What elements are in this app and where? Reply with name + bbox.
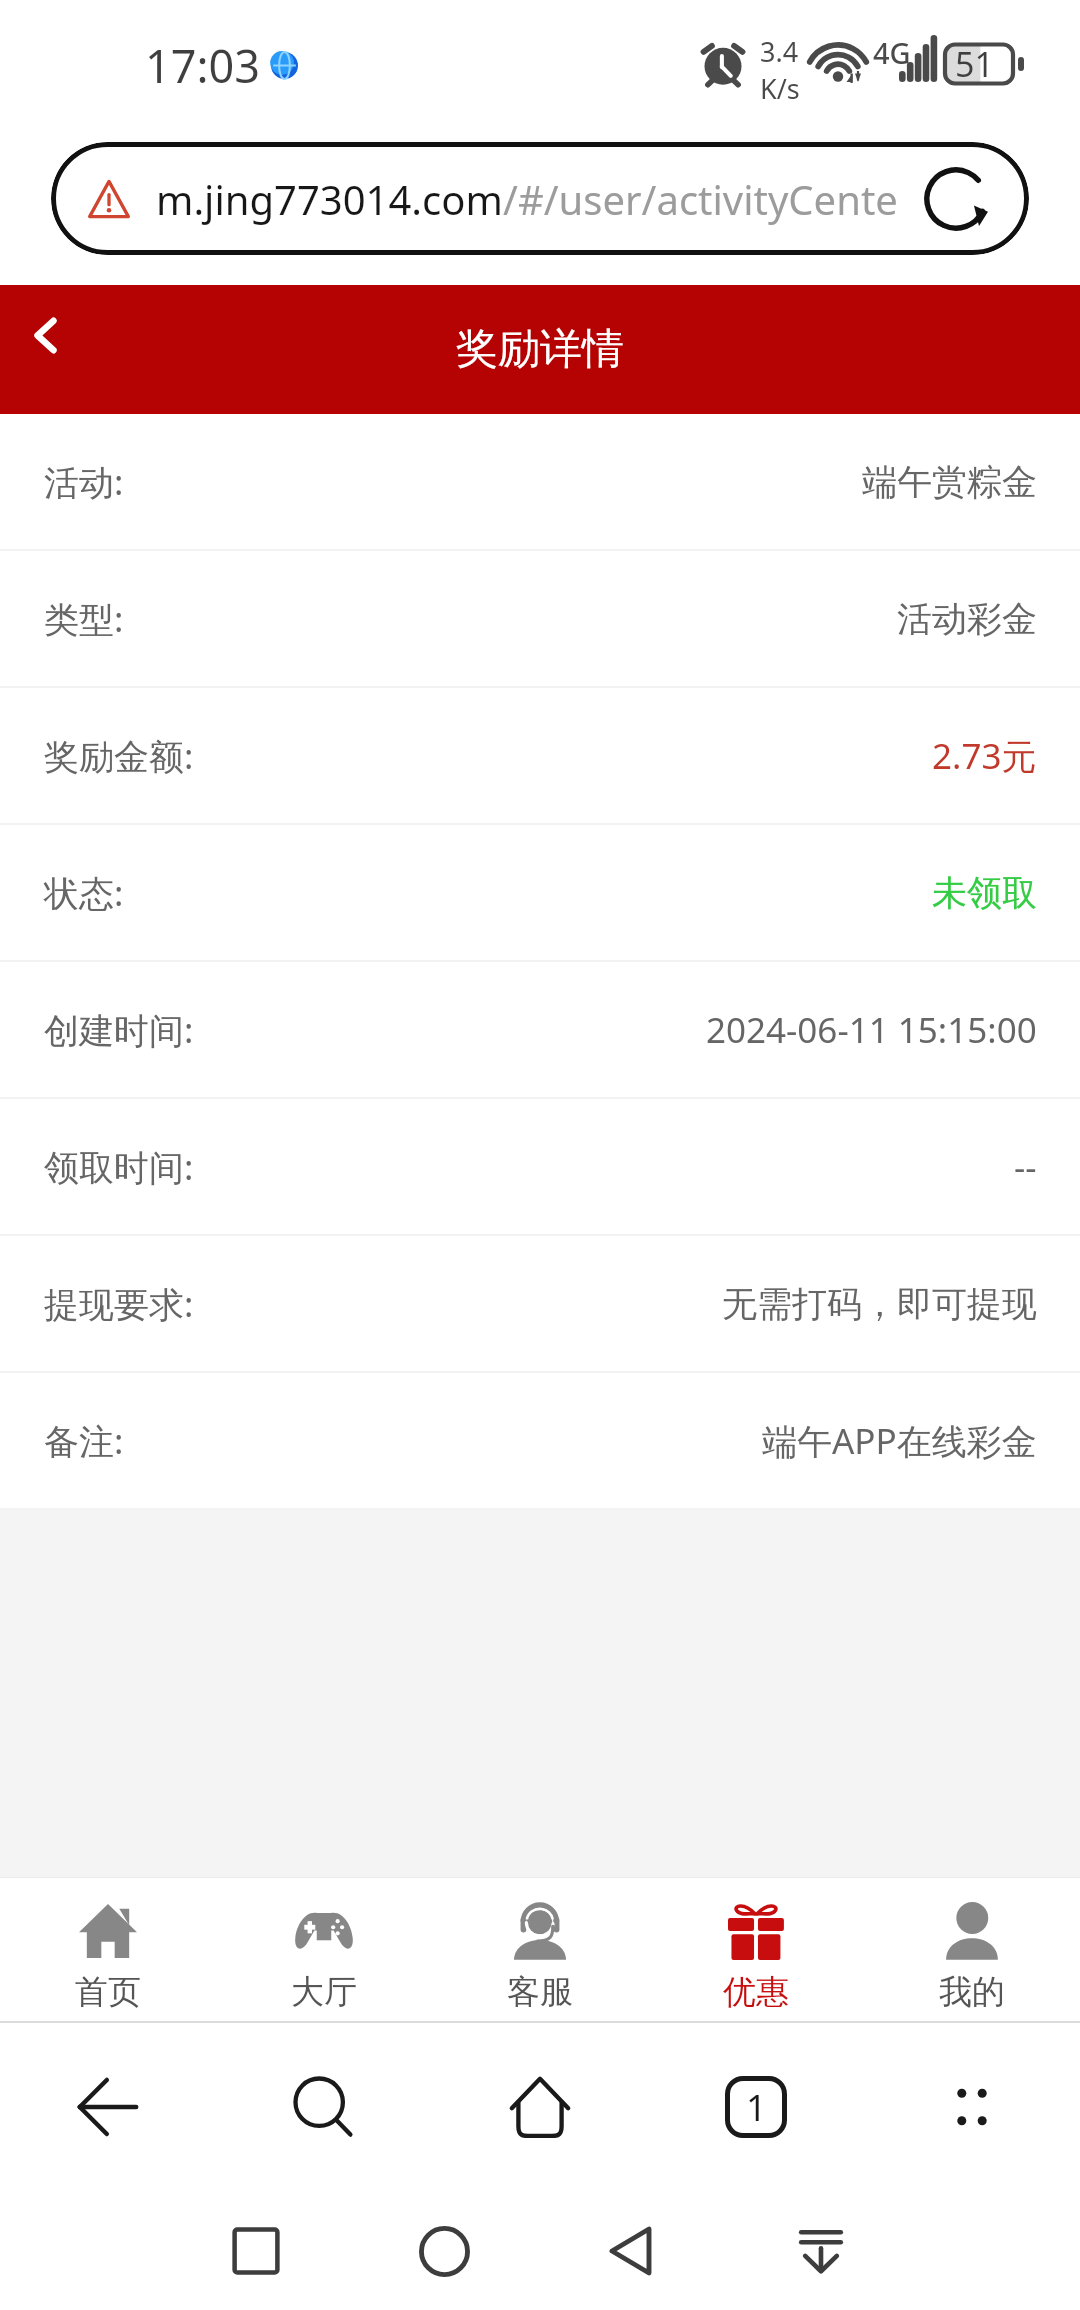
staticText: 状态:: [44, 869, 124, 917]
button[interactable]: Back: [592, 2211, 672, 2291]
button[interactable]: 类型:: [0, 551, 1080, 686]
staticText: 创建时间:: [44, 1006, 194, 1054]
staticText: 51: [955, 41, 994, 87]
button[interactable]: Back: [0, 285, 92, 414]
button[interactable]: More options: [864, 2023, 1080, 2170]
staticText: 未领取: [932, 871, 1037, 915]
staticText: 奖励详情: [456, 323, 624, 376]
staticText: 活动彩金: [897, 597, 1037, 641]
staticText: K/s: [760, 70, 800, 107]
staticText: 奖励金额:: [44, 732, 194, 780]
button[interactable]: 首页: [0, 1878, 216, 2021]
button[interactable]: 状态:: [0, 825, 1080, 960]
button[interactable]: 创建时间:: [0, 962, 1080, 1097]
staticText: /#/user/activityCente: [503, 172, 898, 226]
staticText: 大厅: [291, 1971, 357, 2013]
staticText: 无需打码，即可提现: [722, 1282, 1037, 1326]
staticText: --: [1014, 1143, 1037, 1191]
button[interactable]: 优惠: [648, 1878, 864, 2021]
button[interactable]: 活动:: [0, 414, 1080, 549]
staticText: 我的: [939, 1971, 1005, 2013]
staticText: m.jing773014.com: [156, 172, 503, 226]
button[interactable]: 提现要求:: [0, 1236, 1080, 1371]
button[interactable]: 大厅: [216, 1878, 432, 2021]
staticText: 2.73元: [932, 732, 1037, 780]
button[interactable]: Hide keyboard: [781, 2211, 861, 2291]
staticText: 优惠: [723, 1971, 789, 2013]
button[interactable]: Not secure: [51, 142, 1029, 255]
staticText: 17:03: [145, 35, 261, 96]
button[interactable]: 领取时间:: [0, 1099, 1080, 1234]
staticText: 4G: [873, 33, 911, 72]
button[interactable]: Recents: [216, 2211, 296, 2291]
staticText: 端午赏粽金: [862, 460, 1037, 504]
staticText: 客服: [507, 1971, 573, 2013]
button[interactable]: 我的: [864, 1878, 1080, 2021]
other: Not secure: [87, 177, 131, 221]
staticText: 领取时间:: [44, 1143, 194, 1191]
staticText: 备注:: [44, 1417, 124, 1465]
button[interactable]: 客服: [432, 1878, 648, 2021]
button[interactable]: Tabs: [648, 2023, 864, 2170]
staticText: 3.4: [760, 33, 799, 70]
button[interactable]: 备注:: [0, 1373, 1080, 1508]
button[interactable]: Search: [216, 2023, 432, 2170]
staticText: 类型:: [44, 595, 124, 643]
other: Reload: [924, 167, 988, 231]
staticText: 首页: [75, 1971, 141, 2013]
staticText: 活动:: [44, 458, 124, 506]
button[interactable]: Back: [0, 2023, 216, 2170]
staticText: 提现要求:: [44, 1280, 194, 1328]
staticText: 1: [746, 2083, 767, 2132]
button[interactable]: Home: [432, 2023, 648, 2170]
staticText: 端午APP在线彩金: [762, 1417, 1037, 1465]
button[interactable]: Home: [404, 2211, 484, 2291]
staticText: 2024-06-11 15:15:00: [706, 1006, 1037, 1054]
button[interactable]: 奖励金额:: [0, 688, 1080, 823]
